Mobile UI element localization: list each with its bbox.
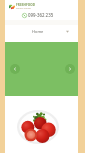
button[interactable]: Home bbox=[5, 25, 78, 36]
staticText: Home bbox=[32, 29, 44, 34]
staticText: organic market bbox=[16, 7, 32, 10]
button[interactable]: Previous slide bbox=[10, 64, 20, 74]
button[interactable] bbox=[17, 110, 59, 144]
staticText: 099-362 235 bbox=[28, 12, 54, 18]
button[interactable]: Open navigation menu bbox=[65, 29, 70, 34]
staticText: FRESHFOOD bbox=[16, 3, 36, 7]
button[interactable]: FRESHFOOD bbox=[9, 3, 36, 10]
button[interactable]: 099-362 235 bbox=[22, 12, 54, 18]
button[interactable]: Next slide bbox=[65, 64, 75, 74]
